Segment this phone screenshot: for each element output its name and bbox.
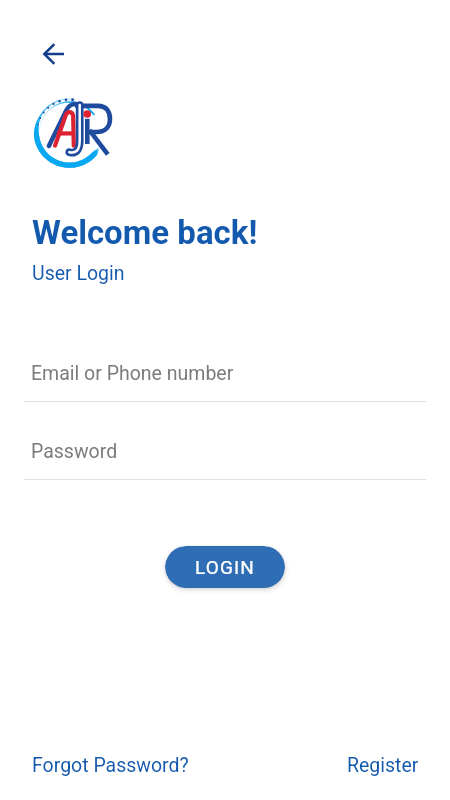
staticText: Register [347,754,419,777]
staticText: Email or Phone number [31,362,234,385]
staticText: LOGIN [195,556,255,578]
staticText: Welcome back! [32,213,258,252]
button[interactable]: Back [35,36,71,72]
staticText: Forgot Password? [32,754,189,777]
staticText: Password [31,440,118,463]
button[interactable]: Forgot Password? [32,754,189,777]
staticText: User Login [32,262,125,285]
button[interactable]: Register [347,754,419,777]
button[interactable]: LOGIN [165,546,285,588]
